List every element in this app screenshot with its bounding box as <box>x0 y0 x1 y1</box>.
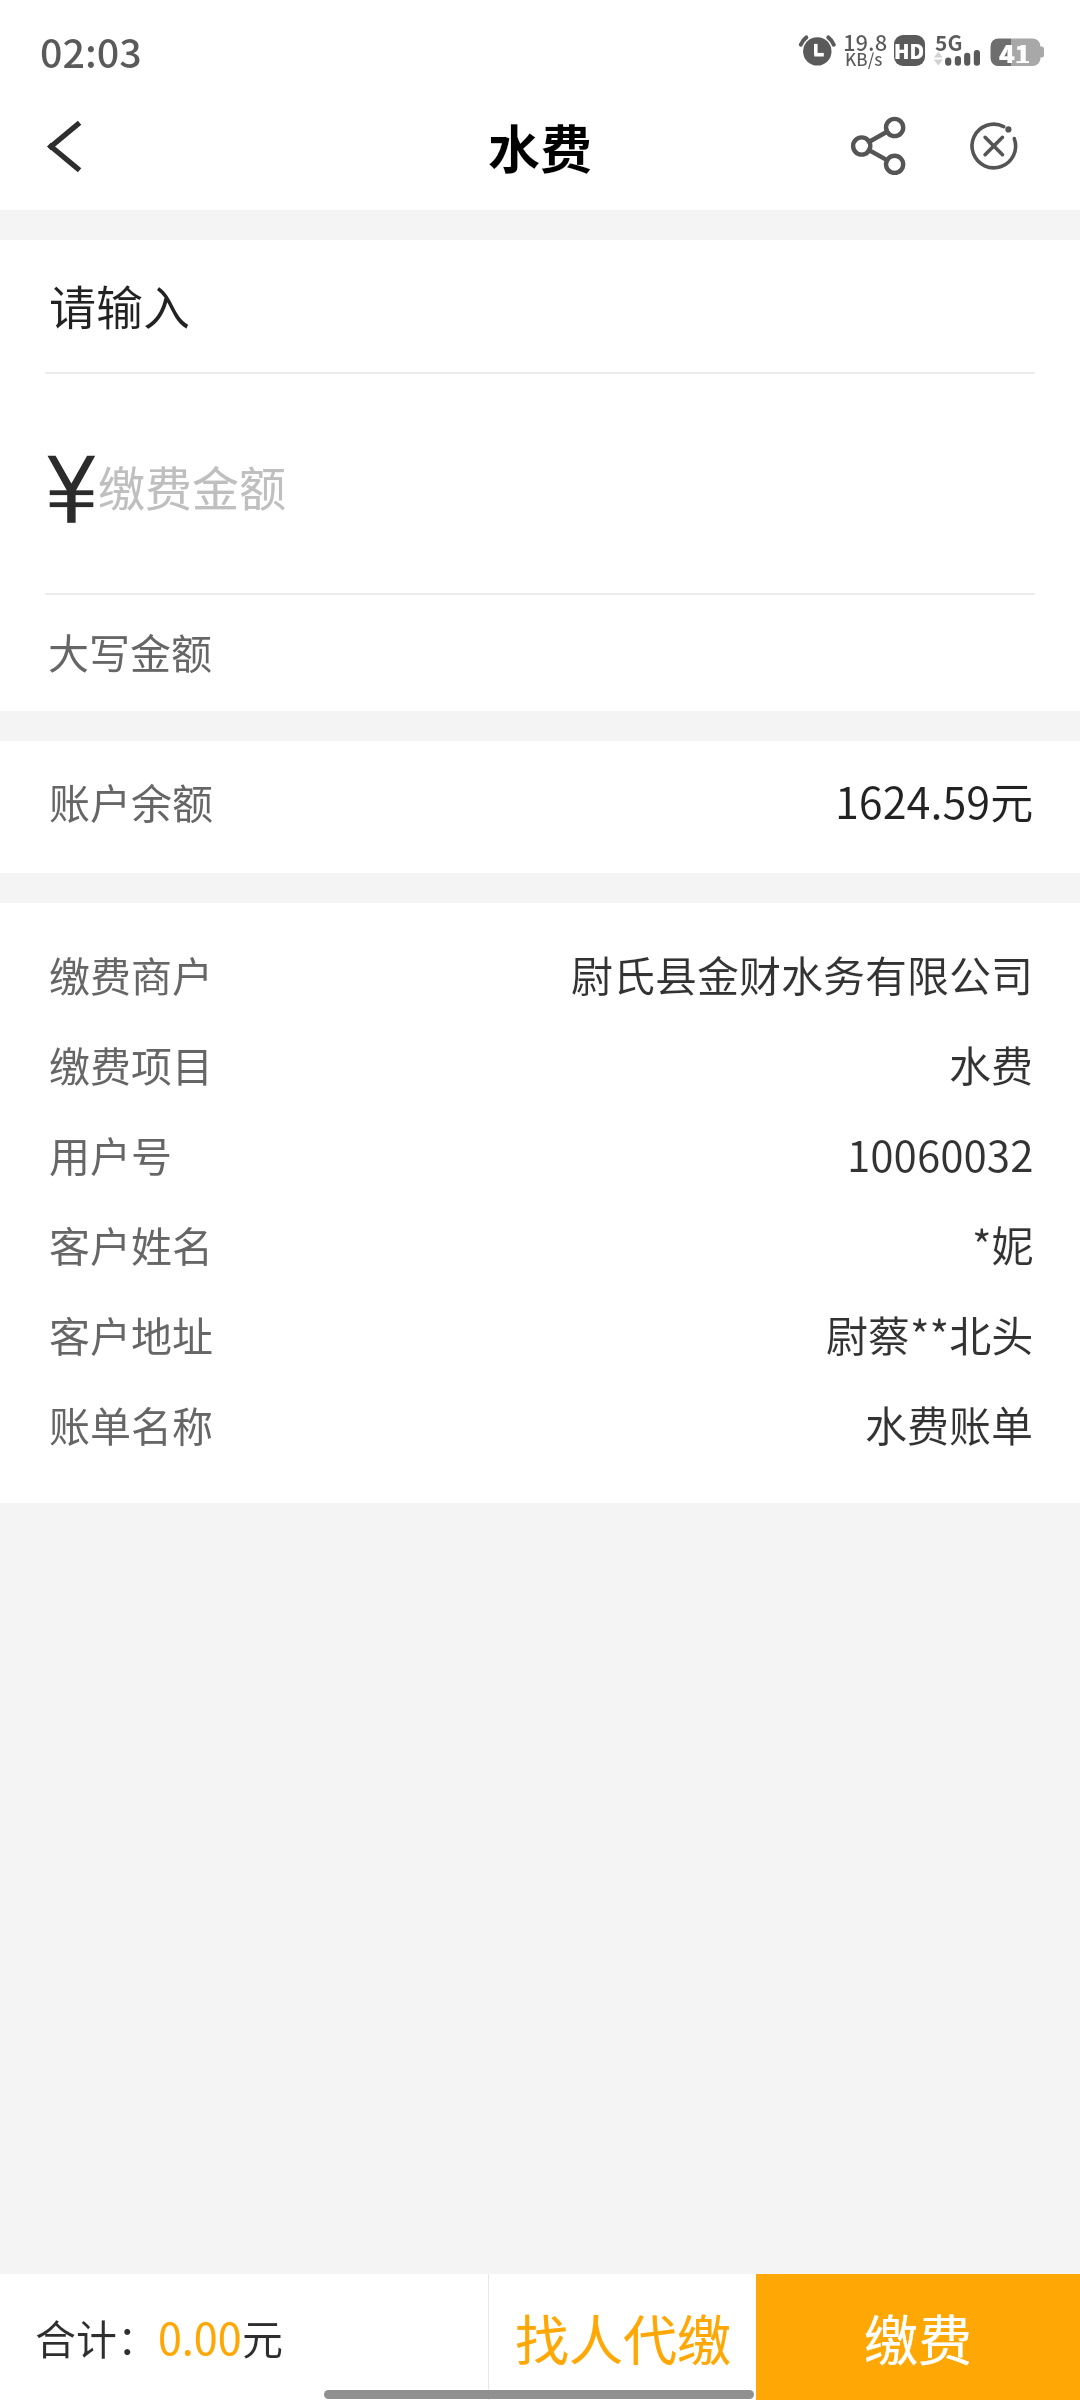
staticText: 0.00 <box>158 2305 242 2367</box>
staticText: 缴费 <box>864 2298 972 2376</box>
button[interactable]: 找人代缴 <box>489 2274 756 2400</box>
staticText: KB/s <box>845 46 883 71</box>
staticText: 水费 <box>488 109 593 184</box>
button[interactable]: Close <box>938 90 1050 210</box>
button[interactable]: 请输入 <box>0 240 1080 372</box>
staticText: 请输入 <box>49 270 190 338</box>
staticText: 合计： <box>35 2307 158 2366</box>
staticText: 水费账单 <box>865 1393 1034 1454</box>
staticText: 客户地址 <box>49 1304 213 1363</box>
staticText: 元 <box>242 2307 283 2366</box>
staticText: 41 <box>999 35 1031 63</box>
staticText: 1624.59元 <box>835 769 1034 831</box>
button[interactable]: Back <box>0 90 110 210</box>
staticText: 19.8 <box>843 25 888 57</box>
staticText: 缴费金额 <box>98 451 286 519</box>
staticText: HD <box>894 36 925 65</box>
staticText: 账单名称 <box>49 1394 213 1453</box>
staticText: *妮 <box>972 1213 1034 1274</box>
staticText: 02:03 <box>40 22 142 79</box>
staticText: 尉氏县金财水务有限公司 <box>571 943 1034 1004</box>
staticText: 缴费项目 <box>49 1034 213 1093</box>
staticText: 缴费商户 <box>49 944 213 1003</box>
staticText: 尉蔡**北头 <box>826 1303 1034 1364</box>
staticText: 客户姓名 <box>49 1214 213 1273</box>
button[interactable]: 缴费金额 <box>0 374 1080 593</box>
button[interactable]: Share <box>823 90 935 210</box>
staticText: 账户余额 <box>49 771 213 830</box>
staticText: 用户号 <box>49 1124 172 1183</box>
staticText: 找人代缴 <box>515 2298 731 2376</box>
staticText: 大写金额 <box>48 621 212 680</box>
button[interactable]: 缴费 <box>756 2274 1080 2400</box>
staticText: 10060032 <box>847 1123 1034 1184</box>
staticText: 5G <box>935 27 963 57</box>
staticText: 水费 <box>949 1033 1034 1094</box>
